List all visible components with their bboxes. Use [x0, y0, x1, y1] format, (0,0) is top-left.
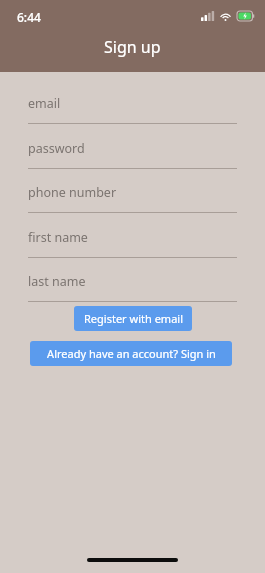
- button[interactable]: Already have an account? Sign in: [30, 341, 232, 366]
- staticText: email: [28, 95, 61, 112]
- staticText: first name: [28, 229, 88, 246]
- staticText: 6:44: [17, 9, 41, 25]
- staticText: last name: [28, 273, 86, 290]
- staticText: phone number: [28, 184, 117, 201]
- button[interactable]: Register with email: [74, 306, 192, 331]
- button[interactable]: last name: [0, 273, 265, 318]
- staticText: Already have an account? Sign in: [47, 346, 216, 361]
- button[interactable]: email: [0, 95, 265, 140]
- button[interactable]: password: [0, 140, 265, 185]
- staticText: password: [28, 140, 85, 157]
- other: Home indicator: [87, 558, 178, 562]
- staticText: Register with email: [84, 311, 183, 326]
- button[interactable]: first name: [0, 229, 265, 274]
- staticText: Sign up: [104, 36, 161, 58]
- button[interactable]: phone number: [0, 184, 265, 229]
